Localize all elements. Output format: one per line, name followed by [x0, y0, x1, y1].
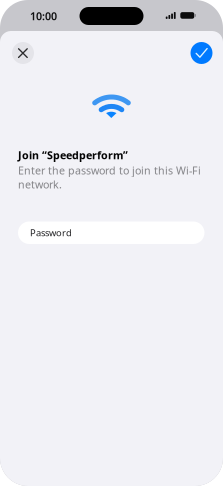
button[interactable]: Join network: [190, 42, 212, 64]
button[interactable]: Password: [18, 221, 204, 244]
staticText: Password: [30, 227, 72, 239]
staticText: 10:00: [30, 9, 57, 23]
staticText: Enter the password to join this Wi-Fi ne…: [18, 163, 201, 191]
staticText: Join “Speedperform”: [18, 148, 128, 162]
button[interactable]: Close: [12, 42, 34, 64]
